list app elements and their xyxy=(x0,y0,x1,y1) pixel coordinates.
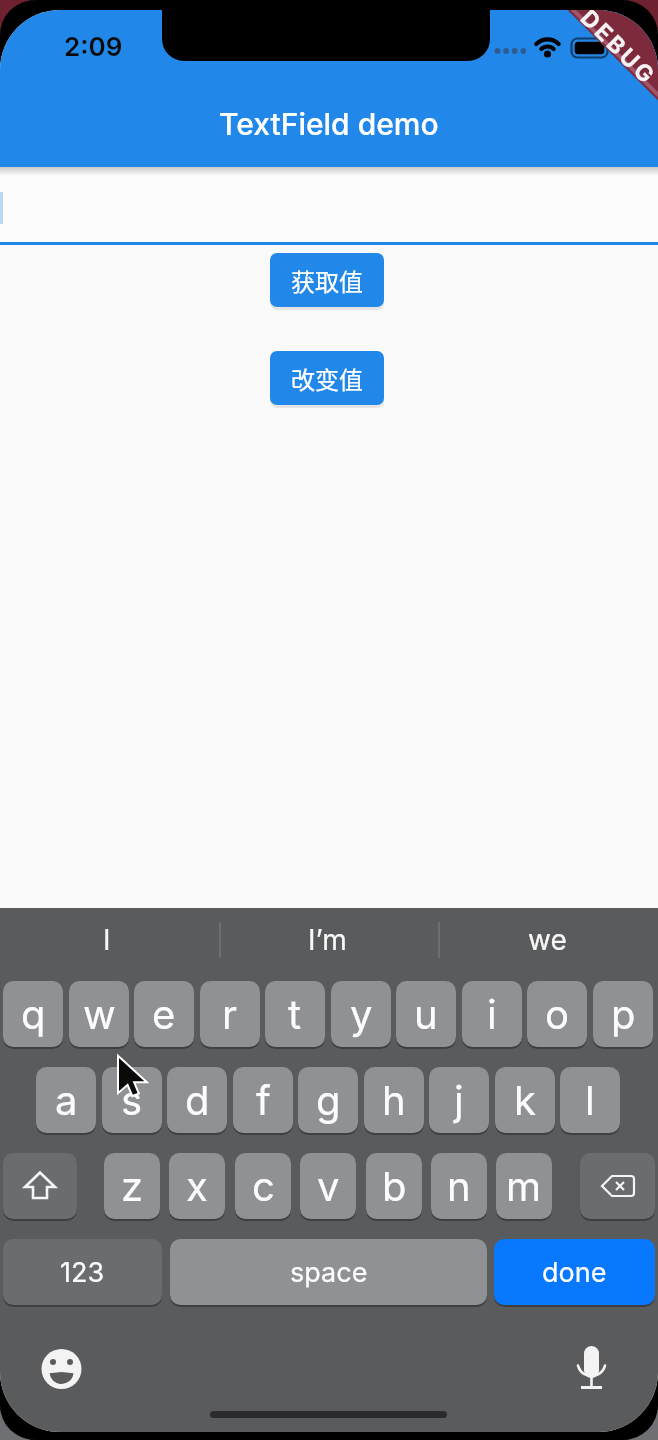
staticText: c xyxy=(252,1162,275,1210)
button[interactable]: q xyxy=(3,981,63,1047)
staticText: done xyxy=(542,1256,607,1289)
button[interactable]: t xyxy=(265,981,325,1047)
button[interactable]: l xyxy=(560,1067,620,1133)
staticText: y xyxy=(350,990,373,1038)
button[interactable]: m xyxy=(496,1153,552,1219)
staticText: 改变值 xyxy=(291,361,363,396)
button[interactable]: 改变值 xyxy=(270,351,384,405)
staticText: DEBUG xyxy=(575,10,658,91)
staticText: I’m xyxy=(308,923,347,957)
staticText: w xyxy=(83,990,116,1038)
button[interactable] xyxy=(580,1153,655,1219)
button[interactable]: I xyxy=(57,923,157,957)
staticText: space xyxy=(290,1256,368,1289)
staticText: b xyxy=(382,1162,407,1210)
staticText: m xyxy=(506,1162,542,1210)
staticText: n xyxy=(447,1162,471,1210)
staticText: q xyxy=(21,990,46,1038)
staticText: I xyxy=(103,923,111,957)
button[interactable]: I’m xyxy=(277,923,377,957)
staticText: e xyxy=(152,990,176,1038)
button[interactable] xyxy=(3,1153,77,1219)
staticText: f xyxy=(256,1076,271,1124)
staticText: 123 xyxy=(60,1256,105,1289)
button[interactable]: i xyxy=(462,981,522,1047)
staticText: v xyxy=(317,1162,340,1210)
staticText: g xyxy=(316,1076,341,1124)
button[interactable]: c xyxy=(235,1153,291,1219)
staticText: t xyxy=(288,990,302,1038)
button[interactable]: k xyxy=(495,1067,555,1133)
button[interactable]: s xyxy=(102,1067,162,1133)
button[interactable]: b xyxy=(366,1153,422,1219)
button[interactable]: r xyxy=(200,981,260,1047)
staticText: o xyxy=(545,990,569,1038)
button[interactable]: x xyxy=(169,1153,225,1219)
button[interactable]: u xyxy=(396,981,456,1047)
button[interactable]: z xyxy=(104,1153,160,1219)
staticText: i xyxy=(487,990,497,1038)
button[interactable]: f xyxy=(233,1067,293,1133)
staticText: d xyxy=(185,1076,210,1124)
staticText: TextField demo xyxy=(219,106,439,142)
button[interactable]: 获取值 xyxy=(270,253,384,307)
staticText: 2:09 xyxy=(64,31,123,62)
staticText: p xyxy=(611,990,636,1038)
staticText: j xyxy=(454,1076,464,1124)
staticText: we xyxy=(528,923,567,957)
button[interactable] xyxy=(0,908,658,1432)
button[interactable]: h xyxy=(364,1067,424,1133)
button[interactable]: y xyxy=(331,981,391,1047)
staticText: k xyxy=(514,1076,536,1124)
staticText: z xyxy=(121,1162,144,1210)
button[interactable]: w xyxy=(69,981,129,1047)
button[interactable]: 123 xyxy=(3,1239,162,1305)
button[interactable]: a xyxy=(36,1067,96,1133)
staticText: 获取值 xyxy=(291,263,363,298)
staticText: u xyxy=(414,990,438,1038)
button[interactable]: g xyxy=(298,1067,358,1133)
button[interactable]: space xyxy=(170,1239,487,1305)
staticText: a xyxy=(55,1076,78,1124)
button[interactable]: p xyxy=(593,981,653,1047)
staticText: s xyxy=(121,1076,143,1124)
staticText: h xyxy=(382,1076,406,1124)
button[interactable]: o xyxy=(527,981,587,1047)
button[interactable]: d xyxy=(167,1067,227,1133)
button[interactable]: we xyxy=(497,923,597,957)
staticText: l xyxy=(585,1076,595,1124)
button[interactable]: n xyxy=(431,1153,487,1219)
button[interactable]: done xyxy=(494,1239,655,1305)
button[interactable]: v xyxy=(300,1153,356,1219)
button[interactable]: j xyxy=(429,1067,489,1133)
staticText: r xyxy=(222,990,238,1038)
button[interactable] xyxy=(0,167,658,240)
staticText: x xyxy=(186,1162,208,1210)
button[interactable]: e xyxy=(134,981,194,1047)
